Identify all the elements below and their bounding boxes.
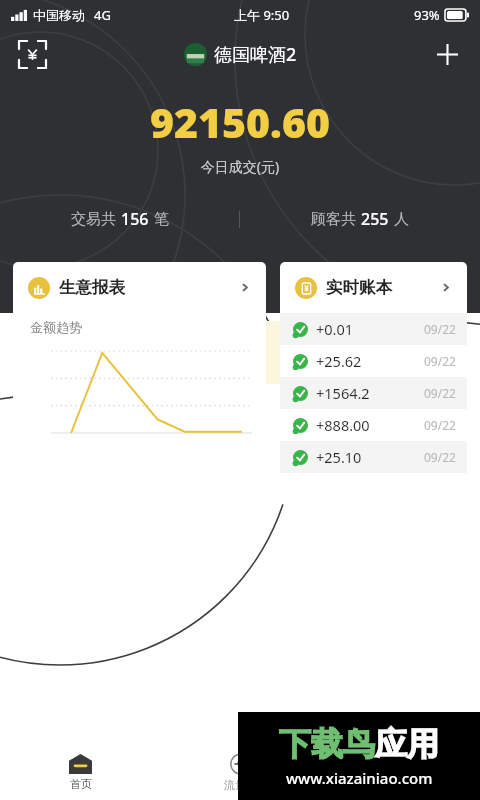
staticText: 09/22	[424, 321, 456, 337]
button[interactable]: 首页	[0, 744, 160, 800]
button[interactable]: 扫码收款	[10, 32, 54, 76]
staticText: www.xiazainiao.com	[286, 768, 433, 788]
staticText: 笔	[154, 210, 169, 229]
staticText: 255	[361, 208, 389, 230]
staticText: 首页	[70, 777, 92, 791]
button[interactable]: +25.10	[280, 441, 467, 473]
button[interactable]: +888.00	[280, 409, 467, 441]
button[interactable]: +0.01	[280, 313, 467, 345]
staticText: 新人优惠券即将失效	[108, 357, 234, 375]
staticText: +25.10	[316, 447, 362, 467]
staticText: +1564.2	[316, 383, 370, 403]
staticText: 实时账本	[326, 277, 392, 298]
button[interactable]: 添加	[426, 33, 468, 75]
button[interactable]: 新人优惠券失效	[13, 321, 467, 384]
button[interactable]: +25.62	[280, 345, 467, 377]
staticText: 上午 9:50	[234, 6, 290, 24]
staticText: 营销工具	[16, 406, 84, 427]
button[interactable]: 流量主	[160, 744, 320, 800]
staticText: 09-20	[373, 330, 407, 348]
button[interactable]: 现金券营销	[0, 449, 480, 505]
staticText: 德国啤酒2	[214, 42, 297, 67]
button[interactable]: 生意报表	[13, 262, 266, 505]
staticText: 中国移动	[33, 7, 85, 23]
staticText: 09/22	[424, 353, 456, 369]
button[interactable]: 实时账本	[280, 262, 467, 505]
staticText: 156	[121, 208, 149, 230]
staticText: +0.01	[316, 319, 354, 339]
staticText: 09/22	[424, 385, 456, 401]
staticText: 应用	[375, 724, 439, 764]
staticText: 生意报表	[59, 277, 125, 298]
staticText: 顾客共	[311, 210, 356, 229]
staticText: 交易共	[71, 210, 116, 229]
button[interactable]: 德国啤酒2	[184, 42, 297, 67]
button[interactable]: +1564.2	[280, 377, 467, 409]
staticText: +888.00	[316, 415, 370, 435]
staticText: 流量主	[224, 778, 257, 792]
staticText: 人	[394, 210, 409, 229]
staticText: 4G	[94, 6, 111, 24]
staticText: 92150.60	[0, 94, 480, 150]
staticText: 金额趋势	[30, 319, 82, 335]
staticText: 今日成交(元)	[0, 157, 480, 176]
staticText: 09/22	[424, 417, 456, 433]
staticText: 下载鸟	[279, 724, 375, 764]
staticText: 93%	[414, 6, 440, 24]
staticText: 09/22	[424, 449, 456, 465]
button[interactable]	[320, 744, 480, 800]
staticText: +25.62	[316, 351, 362, 371]
